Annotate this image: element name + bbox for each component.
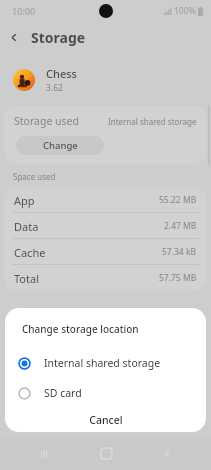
staticText: Space used [13,171,56,182]
staticText: SD card [44,386,82,400]
staticText: Cancel [89,413,123,427]
staticText: Total [14,271,39,286]
button[interactable]: SD card [5,378,206,408]
staticText: Storage [31,28,86,47]
staticText: 3.62 [46,82,63,94]
staticText: Data [14,219,39,234]
staticText: App [14,193,35,208]
staticText: 100% [174,5,196,17]
button[interactable]: Change [16,136,104,155]
button[interactable]: Home [89,437,123,470]
staticText: Internal shared storage [108,116,197,127]
staticText: Chess [46,66,77,81]
staticText: Storage used [14,114,79,128]
button[interactable]: Cancel [5,408,206,432]
button[interactable]: Back [0,23,28,51]
staticText: Change storage location [22,322,139,336]
staticText: 2.47 MB [164,220,197,232]
button[interactable]: App [4,187,207,213]
staticText: 55.22 MB [159,194,197,206]
staticText: 10:00 [12,5,36,17]
button[interactable]: Cache [4,239,207,265]
button[interactable]: Internal shared storage [5,348,206,378]
button[interactable]: Data [4,213,207,239]
staticText: 57.34 kB [162,246,197,258]
staticText: Change [43,139,78,152]
staticText: 57.75 MB [159,272,197,284]
staticText: Cache [14,245,46,260]
staticText: Internal shared storage [44,356,161,370]
button[interactable]: Total [4,265,207,291]
